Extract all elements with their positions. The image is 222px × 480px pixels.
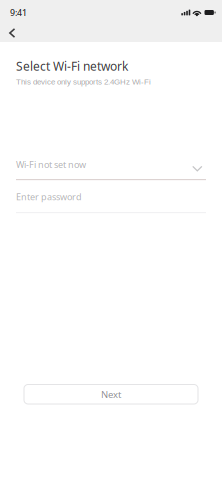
- staticText: This device only supports 2.4GHz Wi-Fi: [16, 77, 151, 86]
- staticText: Wi-Fi not set now: [16, 158, 86, 170]
- staticText: Select Wi-Fi network: [16, 58, 128, 74]
- button[interactable]: Back: [2, 22, 22, 44]
- button[interactable]: Next: [24, 384, 198, 404]
- staticText: 9:41: [10, 6, 27, 18]
- staticText: Next: [101, 388, 121, 401]
- staticText: Enter password: [16, 190, 82, 203]
